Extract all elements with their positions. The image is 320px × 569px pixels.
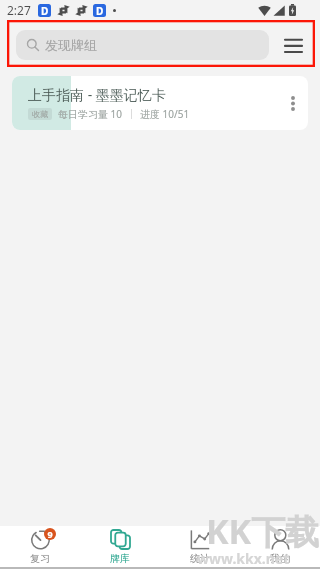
button[interactable]: 9 xyxy=(0,526,80,567)
staticText: 进度 10/51 xyxy=(140,107,190,121)
staticText: 牌库 xyxy=(110,552,130,565)
staticText: 统计 xyxy=(190,552,210,565)
staticText: 每日学习量 10 xyxy=(58,107,123,121)
staticText: KK下载 xyxy=(206,508,320,554)
button[interactable]: Menu xyxy=(277,30,310,60)
staticText: www.kkx.net xyxy=(197,549,290,568)
button[interactable]: 牌库 xyxy=(80,526,160,567)
staticText: 收藏 xyxy=(32,109,48,119)
staticText: 复习 xyxy=(30,552,50,565)
staticText: 上手指南 - 墨墨记忆卡 xyxy=(28,85,166,104)
button[interactable]: 我的 xyxy=(240,526,320,567)
button[interactable]: 发现牌组 xyxy=(16,30,269,60)
staticText: 发现牌组 xyxy=(45,37,97,53)
staticText: D xyxy=(96,4,104,17)
button[interactable]: 上手指南 - 墨墨记忆卡 xyxy=(12,76,308,130)
staticText: 2:27 xyxy=(7,2,31,18)
staticText: D xyxy=(41,4,49,17)
button[interactable]: More options xyxy=(278,76,308,130)
staticText: 9 xyxy=(47,528,53,540)
staticText: 我的 xyxy=(270,552,290,565)
button[interactable]: 统计 xyxy=(160,526,240,567)
